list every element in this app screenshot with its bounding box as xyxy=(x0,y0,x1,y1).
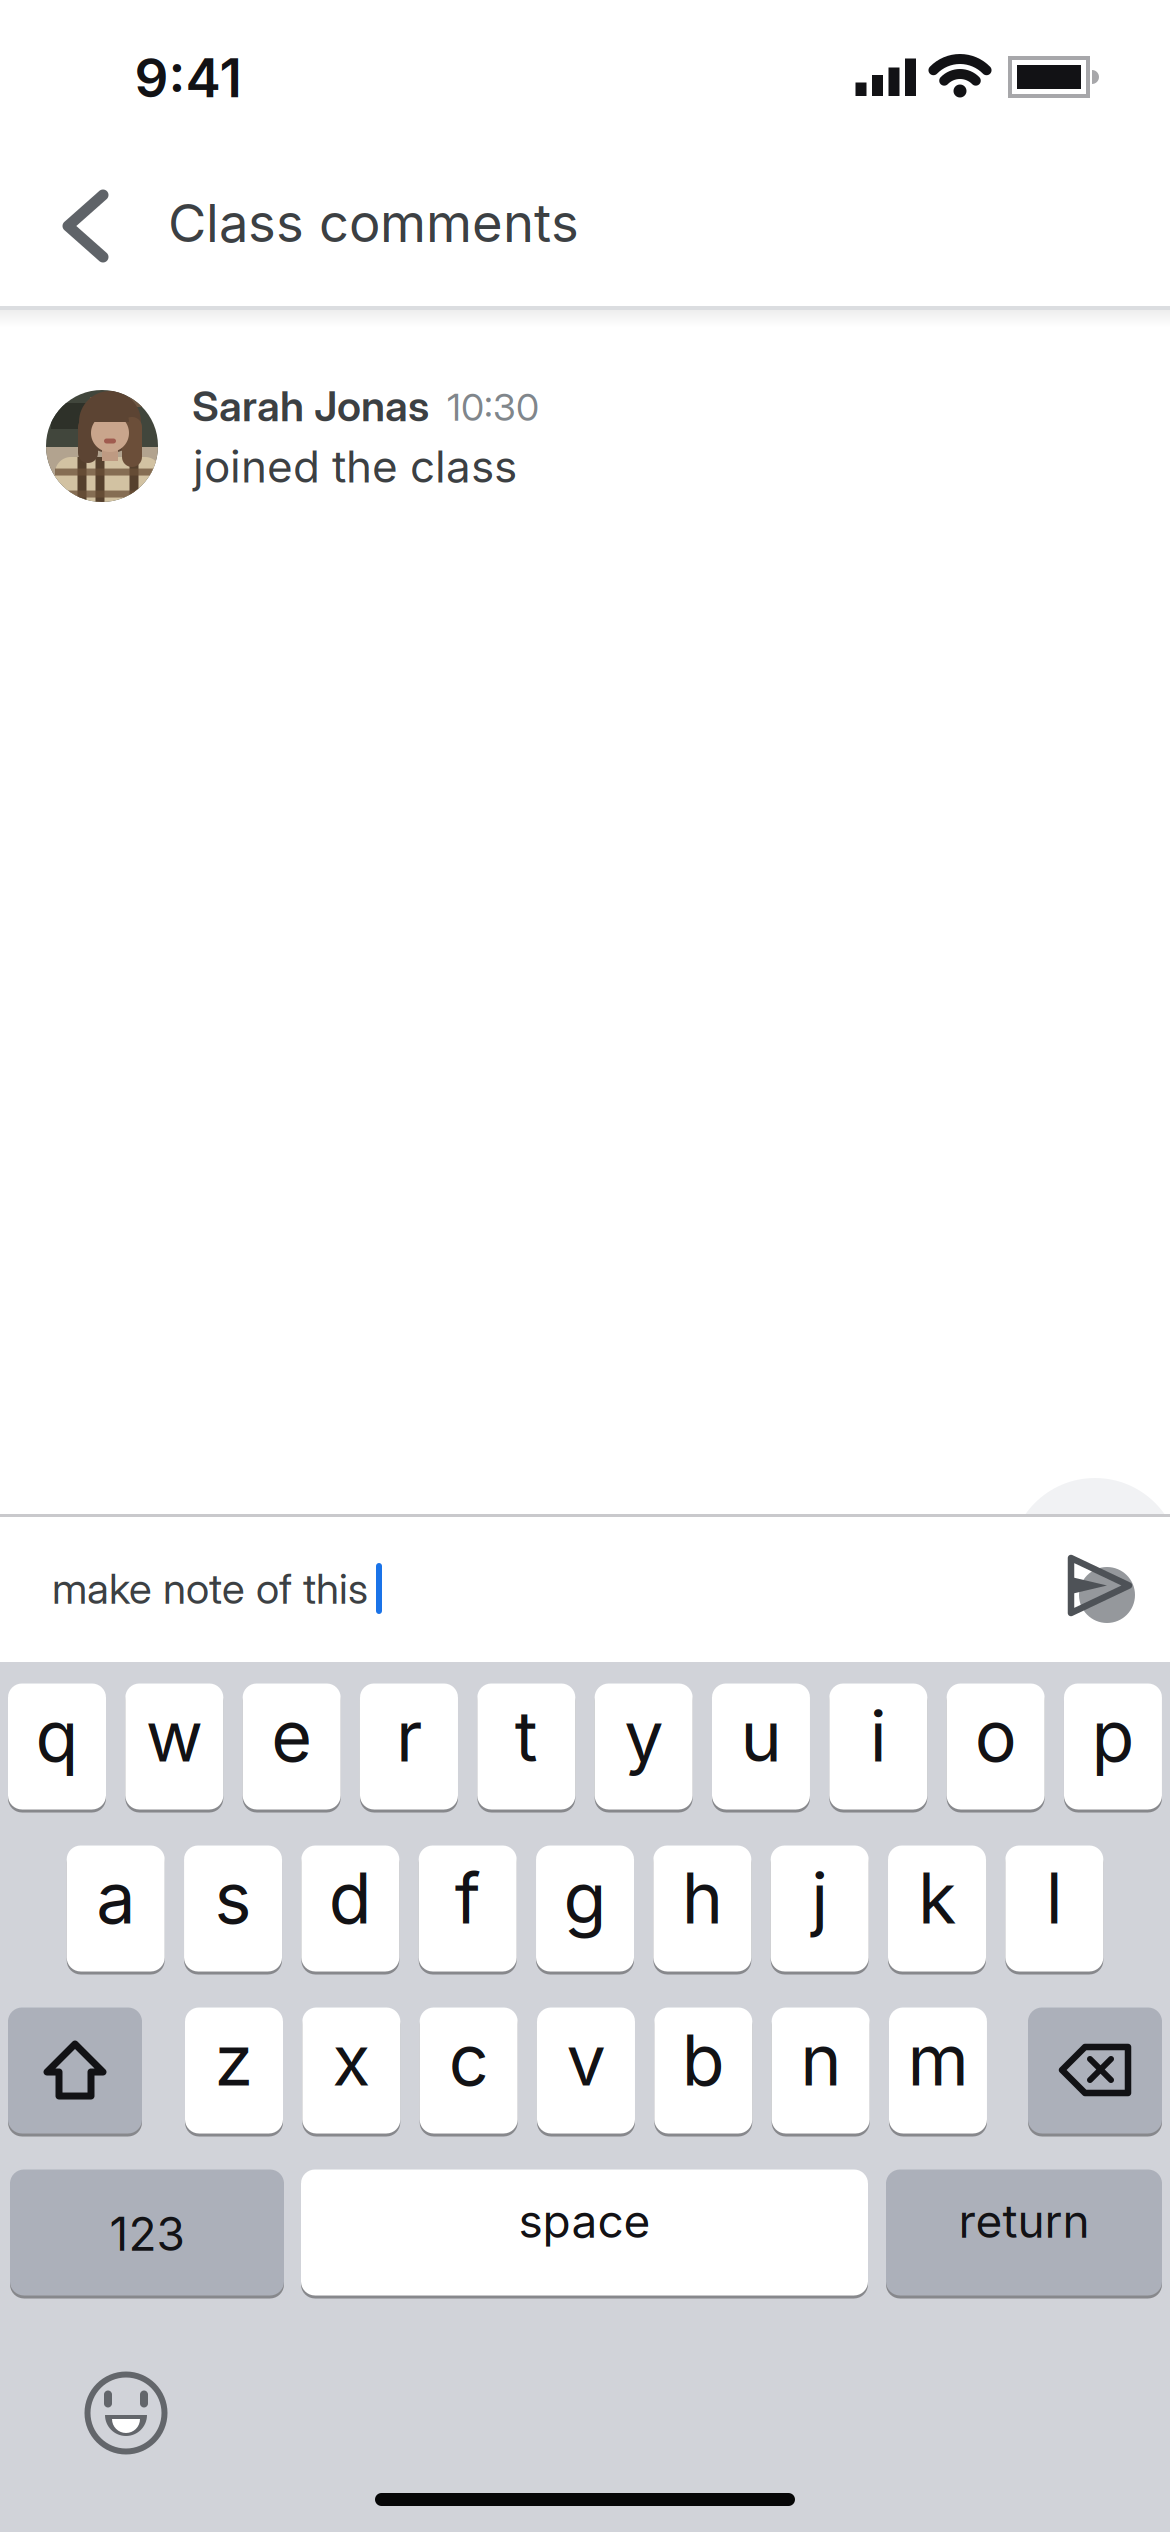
staticText: l xyxy=(1046,1856,1063,1940)
button[interactable]: b xyxy=(654,2007,752,2136)
staticText: t xyxy=(515,1694,538,1778)
button[interactable]: u xyxy=(712,1683,810,1812)
button[interactable]: o xyxy=(947,1683,1045,1812)
button[interactable]: Back xyxy=(0,0,1170,2532)
staticText: w xyxy=(146,1694,203,1778)
staticText: make note of this xyxy=(52,1563,368,1614)
button[interactable]: space xyxy=(301,2169,868,2298)
staticText: q xyxy=(35,1694,78,1778)
staticText: y xyxy=(624,1694,663,1778)
staticText: 9:41 xyxy=(134,46,241,110)
staticText: space xyxy=(518,2193,650,2249)
staticText: s xyxy=(214,1856,251,1940)
staticText: a xyxy=(96,1856,135,1940)
staticText: return xyxy=(958,2193,1089,2249)
button[interactable]: n xyxy=(772,2007,870,2136)
button[interactable]: make note of this xyxy=(0,1515,1000,1662)
button[interactable]: m xyxy=(889,2007,987,2136)
button[interactable]: return xyxy=(886,2169,1162,2298)
staticText: Class comments xyxy=(168,191,579,255)
staticText: v xyxy=(566,2018,605,2102)
staticText: d xyxy=(329,1856,372,1940)
button[interactable]: Delete xyxy=(1028,2007,1162,2136)
staticText: p xyxy=(1091,1694,1134,1778)
button[interactable]: f xyxy=(419,1845,517,1974)
button[interactable]: t xyxy=(477,1683,575,1812)
staticText: z xyxy=(214,2018,253,2102)
staticText: i xyxy=(870,1694,887,1778)
staticText: o xyxy=(975,1694,1017,1778)
staticText: g xyxy=(563,1856,606,1940)
staticText: 10:30 xyxy=(447,384,539,430)
button[interactable]: e xyxy=(243,1683,341,1812)
button[interactable]: a xyxy=(67,1845,165,1974)
button[interactable]: p xyxy=(1064,1683,1162,1812)
staticText: m xyxy=(907,2018,968,2102)
button[interactable]: d xyxy=(301,1845,399,1974)
staticText: Sarah Jonas xyxy=(192,381,429,431)
staticText: 123 xyxy=(109,2206,184,2262)
button[interactable]: r xyxy=(360,1683,458,1812)
button[interactable]: Send xyxy=(1029,1527,1169,1667)
button[interactable]: y xyxy=(595,1683,693,1812)
staticText: h xyxy=(682,1856,723,1940)
staticText: joined the class xyxy=(193,440,517,493)
staticText: c xyxy=(449,2018,489,2102)
button[interactable]: w xyxy=(125,1683,223,1812)
button[interactable]: c xyxy=(420,2007,518,2136)
button[interactable]: g xyxy=(536,1845,634,1974)
button[interactable]: Shift xyxy=(8,2007,142,2136)
button[interactable]: s xyxy=(184,1845,282,1974)
button[interactable]: z xyxy=(185,2007,283,2136)
staticText: f xyxy=(455,1856,481,1940)
staticText: j xyxy=(811,1856,828,1940)
button[interactable]: Emoji xyxy=(76,2363,176,2463)
staticText: e xyxy=(271,1694,312,1778)
button[interactable]: l xyxy=(1005,1845,1103,1974)
staticText: u xyxy=(740,1694,781,1778)
staticText: b xyxy=(682,2018,725,2102)
button[interactable]: j xyxy=(771,1845,869,1974)
staticText: r xyxy=(396,1694,422,1778)
button[interactable]: x xyxy=(302,2007,400,2136)
button[interactable]: h xyxy=(653,1845,751,1974)
button[interactable]: v xyxy=(537,2007,635,2136)
button[interactable]: 123 xyxy=(10,2169,284,2298)
staticText: x xyxy=(332,2018,370,2102)
button[interactable]: k xyxy=(888,1845,986,1974)
staticText: k xyxy=(918,1856,956,1940)
button[interactable]: i xyxy=(829,1683,927,1812)
staticText: n xyxy=(800,2018,841,2102)
button[interactable]: q xyxy=(8,1683,106,1812)
